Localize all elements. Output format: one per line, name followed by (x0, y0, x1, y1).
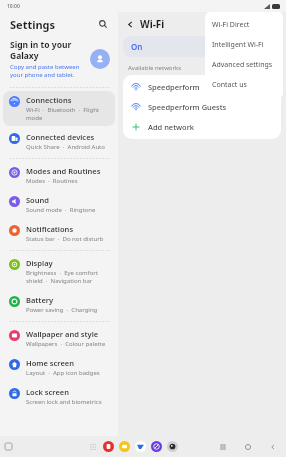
button[interactable]: Connected devices (3, 128, 115, 155)
staticText: Quick Share · Android Auto (26, 143, 105, 151)
staticText: Advanced settings (212, 60, 273, 70)
button[interactable]: Home (242, 441, 253, 452)
button[interactable]: On (123, 36, 281, 57)
staticText: Add network (148, 122, 195, 132)
button[interactable]: Advanced settings (205, 55, 283, 75)
button[interactable]: Notifications (3, 220, 115, 247)
staticText: Modes · Routines (26, 177, 78, 185)
staticText: Display (26, 258, 53, 268)
staticText: Wi-Fi · Bluetooth · Flight mode (26, 106, 110, 122)
button[interactable]: Connections (3, 91, 115, 126)
staticText: Modes and Routines (26, 166, 101, 176)
staticText: Sound mode · Ringtone (26, 206, 96, 214)
button[interactable]: All apps (88, 442, 98, 452)
staticText: Speedperform Guests (148, 102, 227, 112)
staticText: Sound (26, 195, 50, 205)
button[interactable]: Home screen (3, 354, 115, 381)
staticText: Connections (26, 95, 72, 105)
staticText: 10:00 (7, 3, 20, 10)
staticText: Connected devices (26, 132, 95, 142)
button[interactable]: Contact us (205, 75, 283, 95)
staticText: Settings (10, 17, 56, 32)
staticText: Wallpapers · Colour palette (26, 340, 106, 348)
button[interactable]: Modes and Routines (3, 162, 115, 189)
staticText: Home screen (26, 358, 74, 368)
staticText: Available networks (128, 64, 182, 72)
staticText: On (131, 41, 143, 52)
button[interactable]: App shortcut (151, 441, 162, 452)
staticText: Sign in to your Galaxy (10, 39, 86, 61)
staticText: Wallpaper and style (26, 329, 99, 339)
staticText: Contact us (212, 80, 247, 90)
staticText: Brightness · Eye comfort shield · Naviga… (26, 269, 110, 285)
button[interactable]: Sound (3, 191, 115, 218)
button[interactable]: Intelligent Wi-Fi (205, 35, 283, 55)
staticText: Intelligent Wi-Fi (212, 40, 264, 50)
button[interactable]: Back (124, 18, 137, 31)
button[interactable]: Speedperform Guests (123, 97, 281, 117)
button[interactable]: Add network (123, 117, 281, 137)
staticText: Wi-Fi Direct (212, 20, 250, 30)
staticText: Status bar · Do not disturb (26, 235, 104, 243)
button[interactable]: Lock screen (3, 383, 115, 410)
button[interactable]: App shortcut (167, 441, 178, 452)
button[interactable]: Back (267, 441, 278, 452)
button[interactable]: Recent apps (217, 441, 228, 452)
button[interactable]: Recent apps panel (4, 442, 13, 451)
staticText: Notifications (26, 224, 74, 234)
button[interactable]: Wallpaper and style (3, 325, 115, 352)
button[interactable]: Wi-Fi Direct (205, 15, 283, 35)
button[interactable]: App shortcut (119, 441, 130, 452)
staticText: Layout · App icon badges (26, 369, 100, 377)
button[interactable]: Display (3, 254, 115, 289)
button[interactable]: Speedperform (123, 77, 281, 97)
staticText: Speedperform (148, 82, 200, 92)
button[interactable]: App shortcut (135, 441, 146, 452)
button[interactable]: Sign in to your Galaxy (0, 36, 118, 85)
staticText: Wi-Fi (140, 17, 165, 31)
staticText: Lock screen (26, 387, 69, 397)
button[interactable]: App shortcut (103, 441, 114, 452)
staticText: Screen lock and biometrics (26, 398, 102, 406)
staticText: Power saving · Charging (26, 306, 98, 314)
button[interactable]: Search settings (96, 17, 110, 31)
staticText: Battery (26, 295, 54, 305)
button[interactable]: Battery (3, 291, 115, 318)
staticText: Copy and paste between your phone and ta… (10, 63, 86, 79)
